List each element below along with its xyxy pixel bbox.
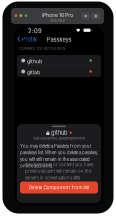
staticText: github: [27, 58, 42, 65]
staticText: Any messages or content you have previou…: [25, 162, 93, 187]
button[interactable]: gitlab: [17, 66, 101, 77]
staticText: CONNECTED ACCOUNTS: [19, 46, 65, 51]
button[interactable]: github: [17, 55, 101, 66]
button[interactable]: Screenshot: [81, 13, 90, 19]
staticText: Passkeys: [46, 36, 71, 43]
staticText: gitlab: [27, 69, 40, 76]
button[interactable]: Profile: [14, 33, 39, 45]
staticText: iOS 18.2: [50, 18, 64, 23]
staticText: Profile: [21, 36, 37, 43]
staticText: http://localhost:3000/experiment: [33, 136, 85, 140]
staticText: 2:09: [28, 28, 42, 35]
staticText: iPhone 16 Pro: [42, 12, 73, 18]
button[interactable]: Delete Component from list: [20, 181, 98, 193]
staticText: github: [51, 129, 68, 136]
button[interactable]: More options: [92, 13, 100, 19]
staticText: Delete Component from list: [28, 185, 89, 190]
staticText: You may delete a Passkey from your passk…: [20, 143, 98, 169]
